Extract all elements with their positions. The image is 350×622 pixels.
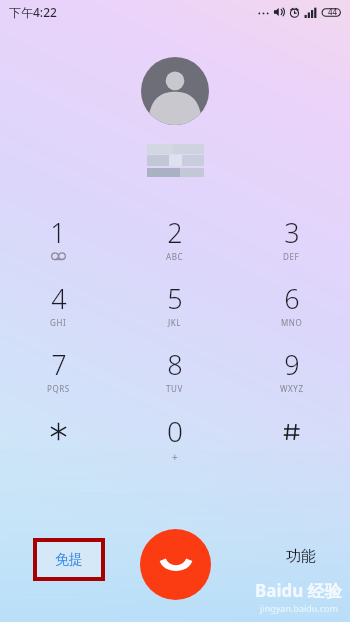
staticText: + [172,450,178,464]
button[interactable]: 7 [0,346,116,412]
staticText: PQRS [47,383,70,394]
button[interactable] [0,412,116,478]
button[interactable]: 功能 [286,547,316,566]
staticText: Baidu 经验 [255,579,342,602]
staticText: 6 [284,280,300,317]
staticText: 2 [167,214,183,251]
staticText: 下午4:22 [9,4,57,20]
button[interactable]: 3 [233,214,350,280]
button[interactable]: 6 [233,280,350,346]
staticText: 1 [50,214,66,251]
button[interactable]: 9 [233,346,350,412]
staticText: 3 [284,214,300,251]
button[interactable]: 2 [116,214,233,280]
staticText: 5 [167,280,183,317]
staticText: 4 [51,280,67,317]
button[interactable]: End call [140,529,211,600]
staticText: ABC [166,251,184,262]
button[interactable]: 1 [0,214,116,280]
button[interactable]: 免提 [37,542,101,577]
staticText: MNO [281,317,303,328]
staticText: DEF [283,251,300,262]
staticText: TUV [166,383,183,394]
staticText: 44 [328,6,338,17]
button[interactable]: 8 [116,346,233,412]
staticText: 7 [51,346,67,383]
staticText: 免提 [55,551,83,569]
staticText: 9 [284,346,300,383]
button[interactable]: 4 [0,280,116,346]
button[interactable] [233,412,350,478]
staticText: jingyan.baidu.com [260,602,338,614]
staticText: JKL [168,317,182,328]
staticText: 8 [167,346,183,383]
button[interactable]: 0 [116,412,233,478]
staticText: GHI [50,317,67,328]
staticText: WXYZ [280,383,304,394]
staticText: 0 [167,412,183,450]
staticText: 功能 [286,547,316,566]
button[interactable]: 5 [116,280,233,346]
